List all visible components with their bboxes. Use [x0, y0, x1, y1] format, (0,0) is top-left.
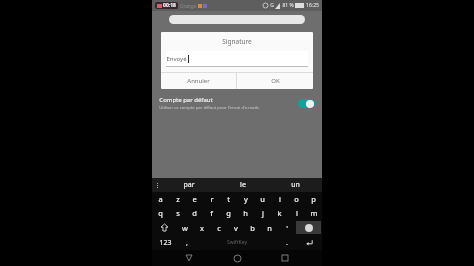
button[interactable]: b: [244, 220, 261, 235]
staticText: par: [183, 180, 195, 190]
staticText: SwiftKey: [227, 239, 247, 246]
staticText: le: [240, 180, 246, 190]
button[interactable]: Annuler: [161, 73, 236, 89]
button[interactable]: e: [186, 192, 203, 206]
staticText: i: [279, 194, 281, 204]
staticText: s: [176, 208, 180, 218]
button[interactable]: g: [220, 206, 237, 220]
staticText: .: [286, 238, 288, 248]
staticText: ': [286, 223, 288, 233]
button[interactable]: Retour: [178, 250, 200, 266]
staticText: 16:25: [306, 2, 319, 9]
staticText: m: [310, 208, 318, 218]
button[interactable]: o: [288, 192, 305, 206]
staticText: f: [210, 208, 213, 218]
staticText: e: [192, 194, 197, 204]
button[interactable]: un: [269, 178, 322, 192]
staticText: x: [200, 223, 204, 233]
button[interactable]: s: [169, 206, 186, 220]
button[interactable]: j: [254, 206, 271, 220]
staticText: w: [182, 223, 188, 233]
staticText: c: [217, 223, 221, 233]
button[interactable]: i: [271, 192, 288, 206]
staticText: t: [227, 194, 230, 204]
staticText: p: [311, 194, 316, 204]
staticText: j: [262, 208, 264, 218]
staticText: Compte par défaut: [159, 96, 213, 104]
button[interactable]: [169, 15, 305, 24]
button[interactable]: f: [203, 206, 220, 220]
staticText: d: [192, 208, 197, 218]
button[interactable]: m: [305, 206, 322, 220]
button[interactable]: q: [152, 206, 169, 220]
button[interactable]: u: [254, 192, 271, 206]
button[interactable]: Entrée: [295, 235, 322, 250]
staticText: Utiliser ce compte par défaut pour l'env…: [159, 105, 259, 111]
staticText: o: [294, 194, 299, 204]
staticText: 00:18: [163, 2, 176, 9]
button[interactable]: p: [305, 192, 322, 206]
button[interactable]: k: [271, 206, 288, 220]
staticText: ,: [186, 238, 188, 248]
staticText: G: [270, 2, 274, 9]
staticText: h: [243, 208, 248, 218]
staticText: k: [277, 208, 282, 218]
staticText: Signature: [222, 37, 252, 46]
button[interactable]: h: [237, 206, 254, 220]
button[interactable]: t: [220, 192, 237, 206]
button[interactable]: Compte par défaut: [159, 93, 315, 113]
button[interactable]: v: [227, 220, 244, 235]
button[interactable]: OK: [237, 73, 313, 89]
staticText: Orange: [180, 3, 196, 9]
button[interactable]: Espace: [195, 235, 278, 250]
staticText: z: [176, 194, 180, 204]
staticText: q: [158, 208, 163, 218]
staticText: OK: [271, 77, 280, 85]
button[interactable]: x: [193, 220, 210, 235]
button[interactable]: ': [278, 220, 295, 235]
staticText: y: [244, 194, 248, 204]
staticText: Envoyé: [166, 55, 187, 63]
staticText: n: [267, 223, 272, 233]
button[interactable]: 123: [152, 235, 178, 250]
button[interactable]: Compte par défaut activé: [298, 99, 315, 108]
button[interactable]: w: [176, 220, 193, 235]
button[interactable]: n: [261, 220, 278, 235]
staticText: u: [260, 194, 265, 204]
button[interactable]: a: [152, 192, 169, 206]
button[interactable]: l: [288, 206, 305, 220]
button[interactable]: c: [210, 220, 227, 235]
staticText: b: [250, 223, 255, 233]
button[interactable]: Supprimer: [296, 221, 321, 234]
button[interactable]: Maj: [152, 220, 176, 235]
staticText: 123: [159, 238, 172, 248]
staticText: a: [158, 194, 163, 204]
staticText: l: [296, 208, 298, 218]
button[interactable]: z: [169, 192, 186, 206]
button[interactable]: Menu: [152, 178, 162, 192]
button[interactable]: r: [203, 192, 220, 206]
button[interactable]: Accueil: [226, 250, 248, 266]
button[interactable]: .: [278, 235, 295, 250]
staticText: un: [291, 180, 300, 190]
button[interactable]: ,: [178, 235, 195, 250]
staticText: r: [210, 194, 214, 204]
staticText: 81 %: [282, 2, 294, 9]
button[interactable]: par: [162, 178, 216, 192]
button[interactable]: le: [216, 178, 269, 192]
button[interactable]: Applications récentes: [274, 250, 296, 266]
staticText: g: [226, 208, 231, 218]
button[interactable]: y: [237, 192, 254, 206]
button[interactable]: Envoyé: [166, 51, 308, 66]
button[interactable]: d: [186, 206, 203, 220]
staticText: Annuler: [187, 77, 210, 85]
staticText: v: [234, 223, 238, 233]
